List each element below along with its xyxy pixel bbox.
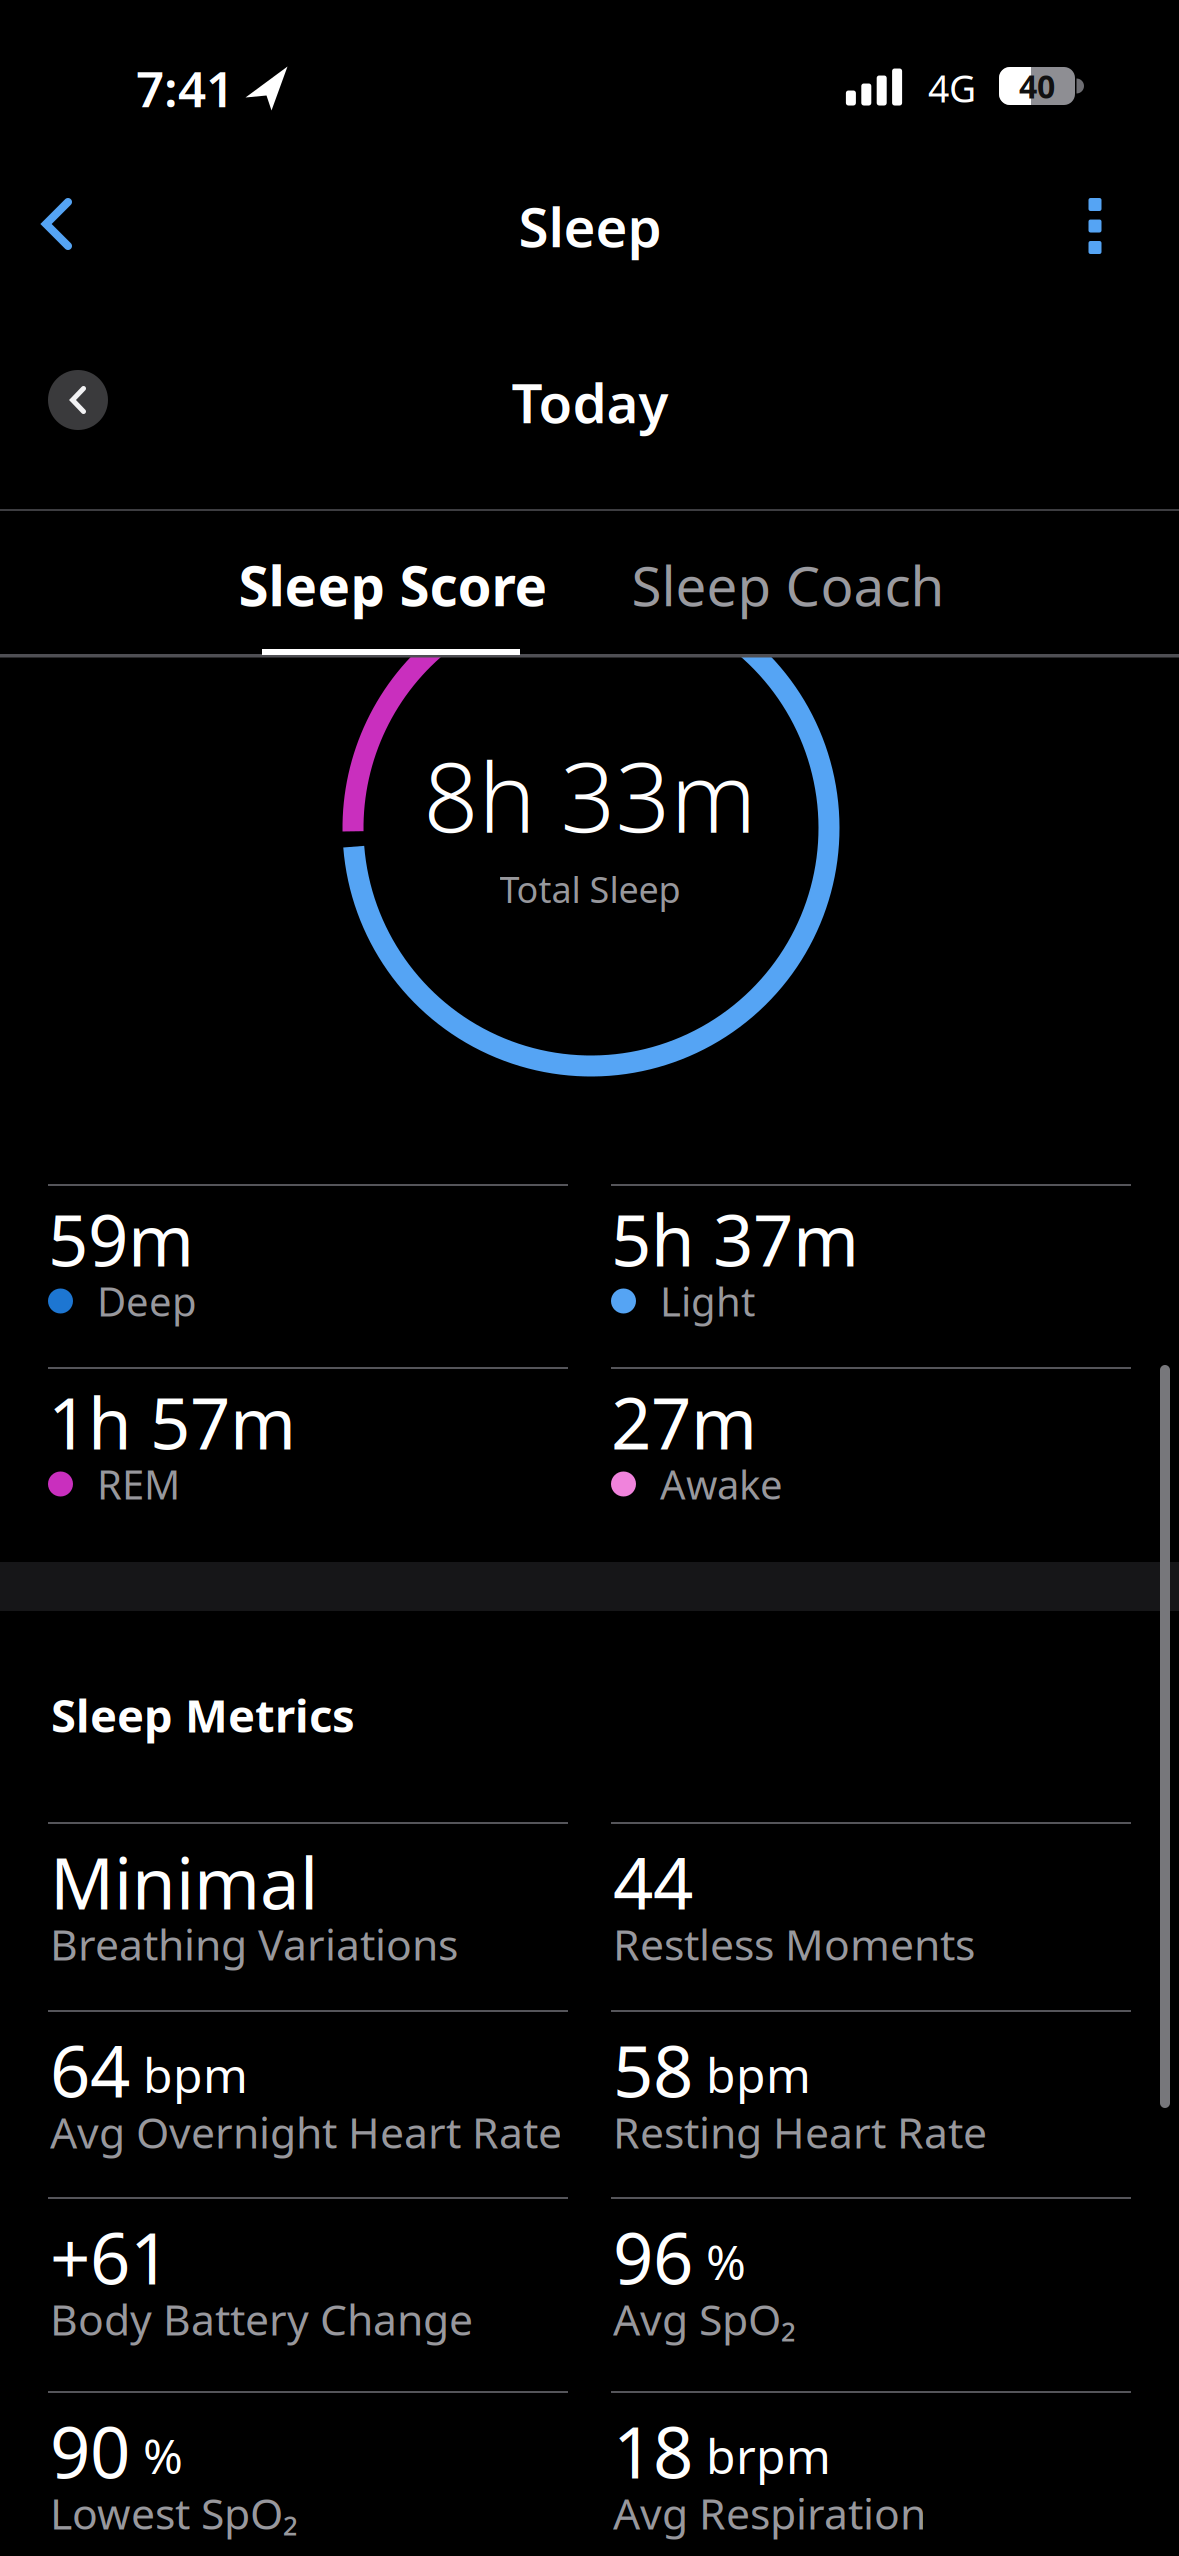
staticText: 44 (613, 1834, 693, 1930)
staticText: Avg Overnight Heart Rate (50, 2103, 562, 2161)
staticText: bpm (143, 2042, 248, 2107)
staticText: 64 (50, 2022, 130, 2118)
staticText: 18 (613, 2403, 693, 2499)
staticText: 40 (1019, 64, 1055, 108)
staticText: Lowest SpO₂ (50, 2484, 298, 2542)
button[interactable]: Previous day (48, 370, 108, 430)
button[interactable]: Sleep Coach (593, 530, 983, 640)
staticText: 7:41 (136, 54, 234, 122)
staticText: brpm (706, 2423, 831, 2488)
staticText: 4G (928, 63, 976, 113)
staticText: Minimal (50, 1834, 318, 1930)
staticText: 1h 57m (48, 1374, 296, 1470)
staticText: Total Sleep (499, 864, 680, 913)
staticText: Sleep Coach (631, 548, 944, 622)
staticText: REM (97, 1457, 180, 1511)
staticText: +61 (50, 2209, 170, 2305)
staticText: 58 (613, 2022, 693, 2118)
staticText: Sleep Score (238, 548, 547, 622)
staticText: 59m (48, 1191, 194, 1287)
button[interactable]: More (1078, 188, 1111, 264)
staticText: Restless Moments (613, 1915, 975, 1973)
staticText: Today (511, 365, 668, 439)
staticText: Avg SpO₂ (613, 2290, 796, 2348)
button[interactable]: Sleep Score (198, 530, 588, 640)
staticText: Breathing Variations (50, 1915, 458, 1973)
staticText: Awake (660, 1457, 783, 1511)
staticText: Deep (97, 1274, 197, 1328)
staticText: bpm (706, 2042, 811, 2107)
staticText: 5h 37m (611, 1191, 859, 1287)
staticText: 96 (613, 2209, 693, 2305)
staticText: 27m (611, 1374, 757, 1470)
staticText: Body Battery Change (50, 2290, 473, 2348)
staticText: % (143, 2423, 183, 2488)
staticText: Light (660, 1274, 755, 1328)
staticText: % (706, 2229, 746, 2294)
staticText: Sleep Metrics (51, 1684, 355, 1746)
staticText: 8h 33m (423, 730, 756, 860)
staticText: Sleep (518, 189, 661, 263)
button[interactable]: Back (30, 186, 84, 262)
staticText: Resting Heart Rate (613, 2103, 987, 2161)
staticText: Avg Respiration (613, 2484, 926, 2542)
staticText: 90 (50, 2403, 130, 2499)
